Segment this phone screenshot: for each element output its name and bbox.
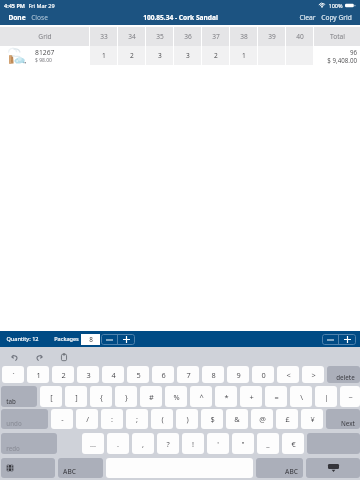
button[interactable]: Clear bbox=[297, 11, 318, 24]
staticText: 3 bbox=[158, 51, 162, 60]
staticText: ' bbox=[217, 439, 219, 449]
button[interactable]: $ bbox=[201, 409, 223, 429]
staticText: / bbox=[86, 414, 89, 424]
button[interactable]: _ bbox=[257, 433, 279, 454]
button[interactable]: Redo bbox=[32, 350, 46, 364]
button[interactable]: 1 bbox=[27, 366, 49, 383]
button[interactable]: ; bbox=[126, 409, 148, 429]
button[interactable]: # bbox=[140, 386, 162, 407]
button[interactable]: ABC bbox=[256, 458, 303, 478]
button[interactable]: Paste bbox=[57, 350, 71, 364]
button[interactable]: > bbox=[302, 366, 324, 383]
button[interactable]: Done bbox=[6, 11, 28, 24]
button[interactable]: " bbox=[232, 433, 254, 454]
button[interactable]: Undo bbox=[7, 350, 21, 364]
button[interactable]: Next bbox=[326, 409, 360, 429]
staticText: - bbox=[61, 414, 64, 424]
button[interactable]: ] bbox=[65, 386, 87, 407]
staticText: Clear bbox=[299, 13, 316, 22]
button[interactable]: 2 bbox=[118, 46, 145, 65]
button[interactable]: 8 bbox=[81, 334, 100, 345]
button[interactable]: ? bbox=[157, 433, 179, 454]
button[interactable]: % bbox=[165, 386, 187, 407]
button[interactable]: 7 bbox=[177, 366, 199, 383]
button[interactable]: = bbox=[265, 386, 287, 407]
button[interactable]: Increase bbox=[339, 334, 356, 345]
staticText: 40 bbox=[296, 32, 304, 41]
button[interactable]: 1 bbox=[230, 46, 257, 65]
button[interactable]: £ bbox=[276, 409, 298, 429]
staticText: ; bbox=[136, 414, 138, 424]
staticText: Quantity: 12 bbox=[6, 335, 39, 343]
button[interactable]: € bbox=[282, 433, 304, 454]
button[interactable]: 1 bbox=[90, 46, 117, 65]
staticText: . bbox=[117, 439, 119, 449]
button[interactable]: 0 bbox=[252, 366, 274, 383]
button[interactable]: 81267 bbox=[0, 46, 89, 65]
button[interactable]: & bbox=[226, 409, 248, 429]
button[interactable]: | bbox=[315, 386, 337, 407]
button[interactable]: 3 bbox=[146, 46, 173, 65]
staticText: € bbox=[291, 439, 296, 449]
button[interactable]: , bbox=[132, 433, 154, 454]
button[interactable]: - bbox=[51, 409, 73, 429]
button[interactable]: ~ bbox=[340, 386, 360, 407]
button[interactable]: 3 bbox=[174, 46, 201, 65]
button[interactable]: Decrease bbox=[101, 334, 117, 345]
staticText: , bbox=[142, 439, 144, 449]
button[interactable]: ' bbox=[207, 433, 229, 454]
button[interactable]: @ bbox=[251, 409, 273, 429]
button[interactable]: ( bbox=[151, 409, 173, 429]
button[interactable]: \ bbox=[290, 386, 312, 407]
button[interactable]: delete bbox=[327, 366, 360, 383]
button[interactable]: ^ bbox=[190, 386, 212, 407]
button[interactable]: undo bbox=[1, 409, 48, 429]
button[interactable]: Copy Grid bbox=[319, 11, 354, 24]
button[interactable]: [ bbox=[40, 386, 62, 407]
button[interactable]: 9 bbox=[227, 366, 249, 383]
button[interactable]: { bbox=[90, 386, 112, 407]
button[interactable]: ... bbox=[82, 433, 104, 454]
staticText: 7 bbox=[186, 370, 191, 380]
button[interactable]: Decrease bbox=[322, 334, 338, 345]
staticText: Packages bbox=[54, 335, 79, 343]
button[interactable]: : bbox=[101, 409, 123, 429]
button[interactable]: Increase bbox=[118, 334, 135, 345]
button[interactable]: ) bbox=[176, 409, 198, 429]
button[interactable]: 4 bbox=[102, 366, 124, 383]
staticText: 39 bbox=[268, 32, 276, 41]
button[interactable]: 3 bbox=[77, 366, 99, 383]
button[interactable]: . bbox=[107, 433, 129, 454]
staticText: 96 bbox=[349, 48, 357, 56]
button[interactable]: < bbox=[277, 366, 299, 383]
button[interactable]: + bbox=[240, 386, 262, 407]
button[interactable]: 6 bbox=[152, 366, 174, 383]
staticText: : bbox=[111, 414, 113, 424]
button[interactable]: 2 bbox=[202, 46, 229, 65]
staticText: { bbox=[100, 392, 103, 402]
staticText: 34 bbox=[128, 32, 136, 41]
button[interactable]: ¥ bbox=[301, 409, 323, 429]
button[interactable]: ! bbox=[182, 433, 204, 454]
button[interactable]: tab bbox=[1, 386, 37, 407]
staticText: > bbox=[311, 370, 316, 380]
button[interactable]: } bbox=[115, 386, 137, 407]
staticText: % bbox=[173, 392, 180, 402]
button[interactable]: ABC bbox=[58, 458, 103, 478]
button[interactable]: * bbox=[215, 386, 237, 407]
button[interactable]: Change keyboard bbox=[1, 458, 55, 478]
button[interactable]: 2 bbox=[52, 366, 74, 383]
button[interactable]: / bbox=[76, 409, 98, 429]
button[interactable]: 5 bbox=[127, 366, 149, 383]
button[interactable]: ` bbox=[2, 366, 24, 383]
button[interactable]: 8 bbox=[202, 366, 224, 383]
staticText: 1 bbox=[242, 51, 246, 60]
staticText: * bbox=[224, 392, 229, 402]
button[interactable]: redo bbox=[1, 433, 57, 454]
button[interactable]: Dismiss keyboard bbox=[306, 458, 360, 478]
button[interactable]: Close bbox=[29, 11, 50, 24]
